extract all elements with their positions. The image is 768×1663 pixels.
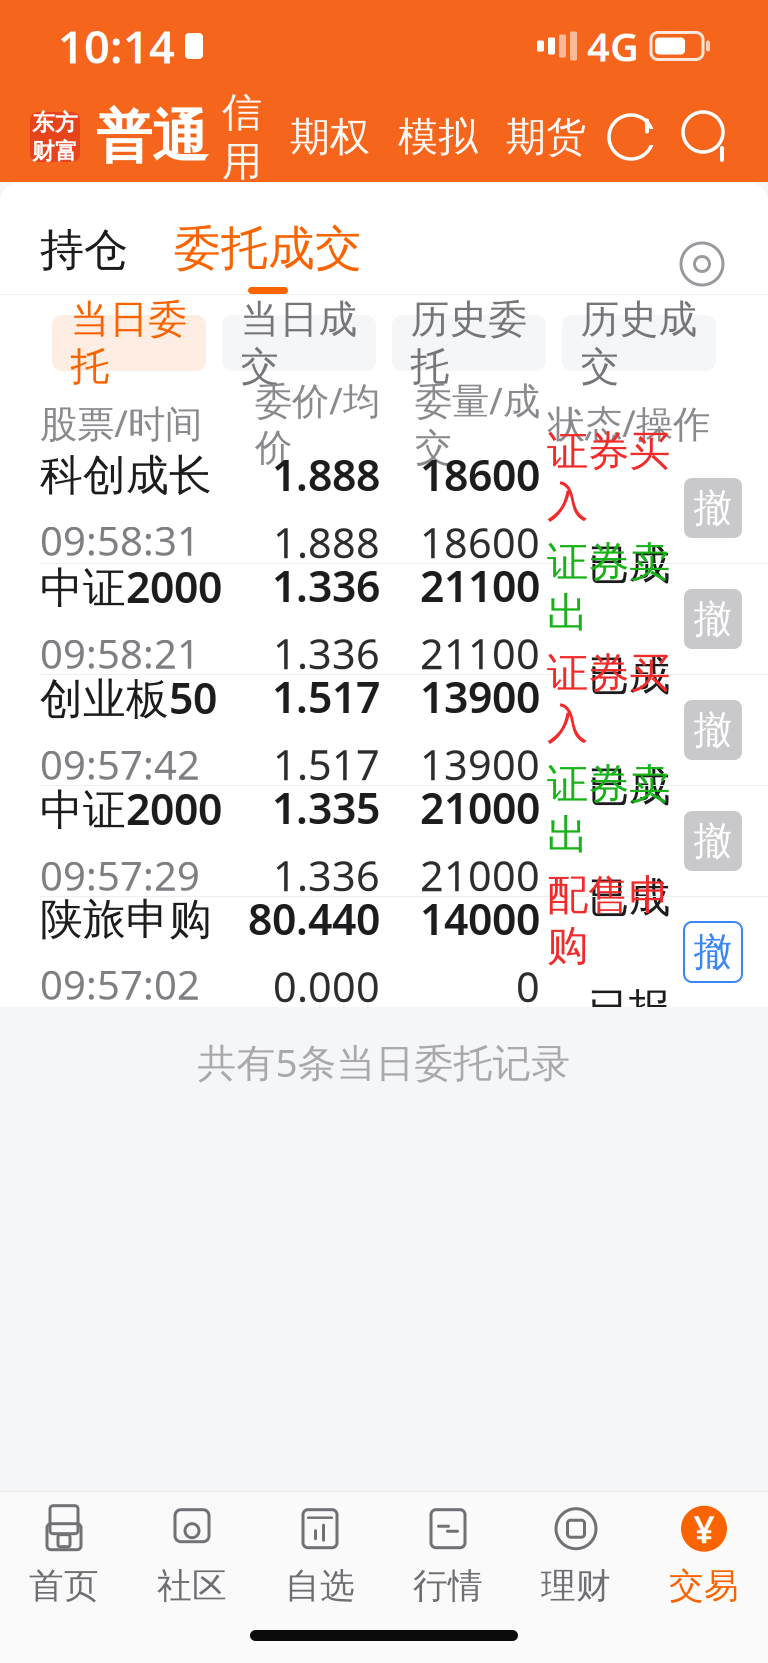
staticText: 持仓 [40, 223, 128, 277]
staticText: 理财 [541, 1565, 611, 1607]
button[interactable]: 理财 [512, 1506, 640, 1604]
staticText: 已成 [588, 761, 670, 812]
staticText: 证券卖出 [547, 537, 670, 638]
staticText: 已成 [588, 872, 670, 923]
staticText: 配售申购 [547, 870, 670, 971]
staticText: 已报 [588, 983, 670, 1034]
staticText: 委价/均价 [255, 375, 380, 471]
staticText: 状态/操作 [548, 398, 710, 448]
staticText: 21000 [420, 779, 540, 836]
staticText: 21100 [420, 557, 540, 614]
button[interactable]: Search [676, 106, 738, 168]
staticText: 信用 [222, 88, 262, 186]
button[interactable]: 历史成交 [562, 315, 716, 371]
button[interactable]: 撤单 [684, 589, 742, 649]
button[interactable]: 自选 [256, 1506, 384, 1604]
staticText: 撤 [693, 928, 732, 976]
button[interactable]: 委托成交 [168, 220, 368, 294]
staticText: 撤 [693, 595, 732, 643]
staticText: 行情 [413, 1565, 483, 1607]
staticText: 创业板50 [40, 669, 217, 726]
button[interactable]: 陕旅申购 [0, 897, 768, 1007]
staticText: 09:58:31 [40, 514, 200, 567]
staticText: 已成 [588, 650, 670, 701]
staticText: 自选 [285, 1565, 355, 1607]
button[interactable]: 当日委托 [52, 315, 206, 371]
button[interactable]: 创业板50 [0, 675, 768, 785]
staticText: 当日成交 [240, 295, 357, 390]
button[interactable]: Settings [672, 234, 732, 294]
button[interactable]: 撤单 [684, 811, 742, 871]
staticText: 当日委托 [70, 295, 187, 390]
staticText: 期货 [506, 112, 586, 161]
staticText: 中证2000 [40, 780, 222, 837]
staticText: 财富 [32, 137, 78, 165]
staticText: 09:58:21 [40, 627, 200, 680]
staticText: 1.336 [273, 626, 380, 681]
staticText: 13900 [420, 668, 540, 725]
staticText: 1.888 [272, 446, 380, 503]
staticText: 09:57:29 [40, 849, 200, 902]
staticText: 共有5条当日委托记录 [197, 1036, 570, 1088]
staticText: 东方 [32, 109, 78, 136]
staticText: 09:57:02 [40, 958, 200, 1011]
staticText: 14000 [420, 890, 540, 947]
staticText: 科创成长 [40, 449, 212, 502]
staticText: 社区 [157, 1565, 227, 1607]
staticText: 21100 [420, 626, 540, 681]
staticText: 首页 [29, 1565, 99, 1607]
staticText: 80.440 [248, 890, 380, 947]
staticText: 1.888 [273, 515, 380, 570]
staticText: 委量/成交 [415, 375, 540, 471]
staticText: 撤 [693, 817, 732, 865]
button[interactable]: 撤单 [684, 478, 742, 538]
staticText: 期权 [290, 112, 370, 161]
staticText: 1.335 [272, 779, 380, 836]
button[interactable]: 期权 [276, 106, 384, 168]
staticText: 0.000 [273, 959, 380, 1014]
button[interactable]: 科创成长 [0, 453, 768, 563]
button[interactable]: 期货 [492, 106, 600, 168]
staticText: 证券买入 [547, 426, 670, 527]
staticText: 1.517 [273, 737, 380, 792]
staticText: 普通 [96, 103, 208, 171]
staticText: 1.336 [272, 557, 380, 614]
staticText: 撤 [693, 706, 732, 754]
button[interactable]: 持仓 [34, 223, 134, 294]
staticText: ¥ [693, 1504, 714, 1553]
staticText: 中证2000 [40, 558, 222, 615]
staticText: 陕旅申购 [40, 893, 212, 946]
staticText: 18600 [420, 515, 540, 570]
staticText: 历史委托 [410, 295, 527, 390]
staticText: 1.517 [272, 668, 380, 725]
staticText: 已成 [588, 539, 670, 590]
button[interactable]: 当日成交 [222, 315, 376, 371]
staticText: 证券卖出 [547, 759, 670, 860]
staticText: 10:14 [58, 16, 175, 76]
button[interactable]: 行情 [384, 1506, 512, 1604]
button[interactable]: Refresh [600, 106, 662, 168]
button[interactable]: 中证2000 [0, 564, 768, 674]
staticText: 模拟 [398, 112, 478, 161]
staticText: 4G [587, 19, 639, 72]
staticText: 交易 [669, 1565, 739, 1607]
button[interactable]: 信用 [208, 106, 276, 168]
staticText: 0 [516, 959, 540, 1014]
staticText: 1.336 [273, 848, 380, 903]
staticText: 股票/时间 [40, 398, 202, 448]
staticText: 委托成交 [174, 220, 362, 277]
button[interactable]: 历史委托 [392, 315, 546, 371]
staticText: 撤 [693, 484, 732, 532]
staticText: 18600 [420, 446, 540, 503]
staticText: 历史成交 [580, 295, 697, 390]
staticText: 21000 [420, 848, 540, 903]
button[interactable]: ¥ [640, 1506, 768, 1604]
button[interactable]: 模拟 [384, 106, 492, 168]
button[interactable]: 社区 [128, 1506, 256, 1604]
staticText: 13900 [420, 737, 540, 792]
button[interactable]: 撤单 [684, 922, 742, 982]
button[interactable]: 中证2000 [0, 786, 768, 896]
staticText: 证券买入 [547, 648, 670, 749]
button[interactable]: 首页 [0, 1506, 128, 1604]
button[interactable]: 撤单 [684, 700, 742, 760]
